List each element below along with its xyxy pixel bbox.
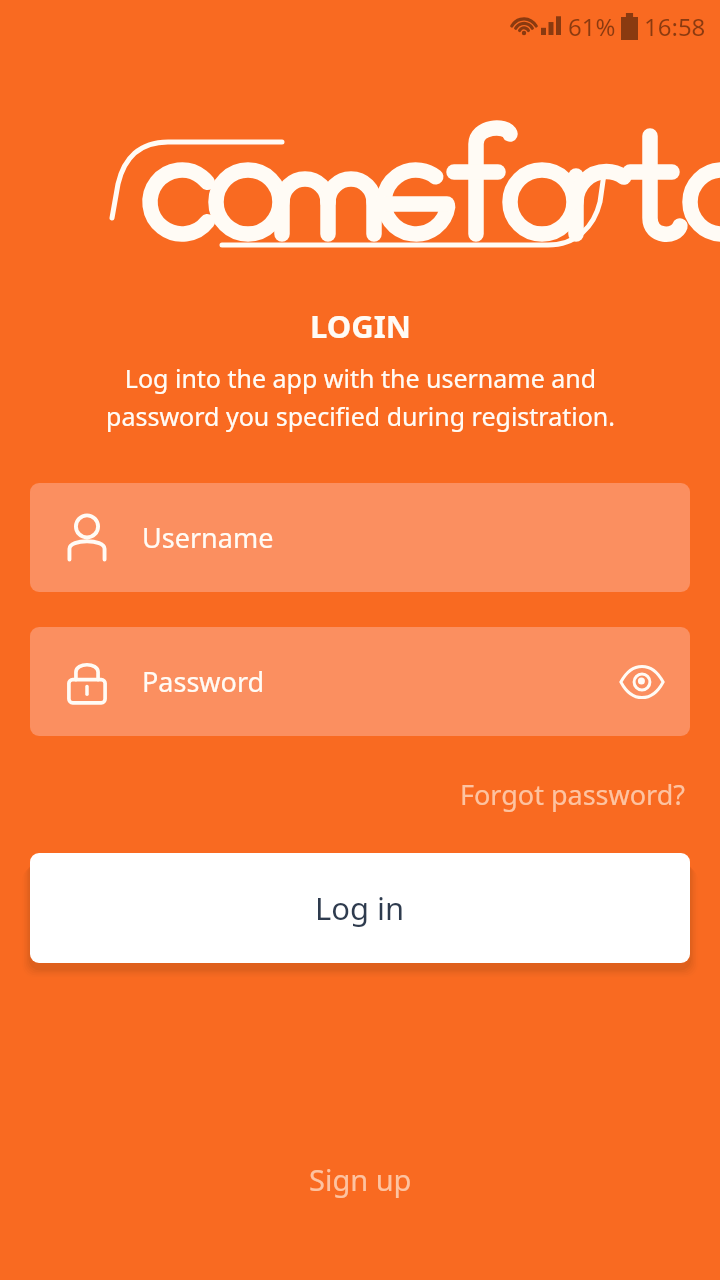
staticText: LOGIN — [310, 305, 411, 347]
button[interactable]: Sign up — [293, 1152, 428, 1207]
staticText: 16:58 — [644, 10, 706, 43]
staticText: Log in — [315, 887, 405, 929]
button[interactable]: Forgot password? — [456, 772, 690, 817]
staticText: Log into the app with the username and p… — [106, 361, 615, 433]
staticText: Password — [142, 663, 616, 700]
staticText: 61% — [568, 10, 616, 43]
button[interactable]: Show password — [616, 656, 668, 708]
button[interactable]: Log in — [30, 853, 690, 963]
button[interactable]: Password — [30, 627, 690, 736]
staticText: Username — [142, 519, 274, 556]
staticText: Forgot password? — [460, 776, 686, 813]
button[interactable]: Username — [30, 483, 690, 592]
staticText: Sign up — [309, 1160, 412, 1199]
